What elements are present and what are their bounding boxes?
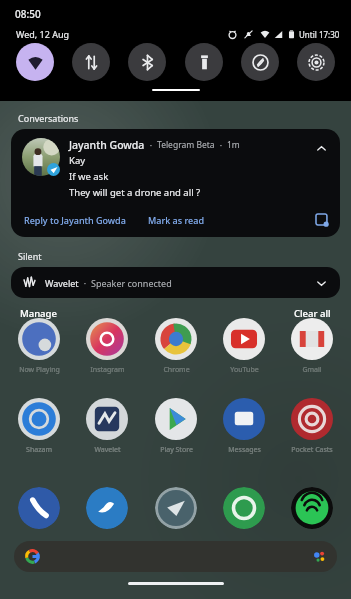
- staticText: Speaker connected: [91, 277, 172, 289]
- staticText: Conversations: [18, 112, 79, 124]
- button[interactable]: Now Playing: [12, 318, 66, 375]
- staticText: ·: [145, 139, 157, 151]
- button[interactable]: Mark as read: [146, 212, 206, 228]
- staticText: They will get a drone and all ?: [69, 186, 201, 199]
- staticText: Wavelet: [45, 277, 79, 289]
- button[interactable]: Gmail: [285, 318, 339, 375]
- button[interactable]: Play Store: [149, 398, 203, 455]
- button[interactable]: Clear all: [292, 305, 333, 322]
- button[interactable]: Pocket Casts: [285, 398, 339, 455]
- button[interactable]: Twitter: [86, 487, 128, 529]
- staticText: Shazam: [26, 445, 52, 455]
- button[interactable]: Phone: [18, 487, 60, 529]
- staticText: 1m: [227, 139, 240, 151]
- button[interactable]: WhatsApp: [223, 487, 265, 529]
- staticText: Mark as read: [148, 214, 204, 226]
- button[interactable]: Jayanth Gowda: [11, 129, 340, 237]
- staticText: YouTube: [230, 365, 259, 375]
- button[interactable]: Reply to Jayanth Gowda: [22, 212, 128, 228]
- staticText: Silent: [18, 250, 42, 262]
- button[interactable]: Flashlight: [185, 43, 223, 81]
- button[interactable]: Instagram: [80, 318, 134, 375]
- staticText: Gmail: [302, 365, 322, 375]
- staticText: Messages: [228, 445, 261, 455]
- button[interactable]: Spotify: [291, 487, 333, 529]
- staticText: Telegram Beta: [157, 139, 215, 151]
- button[interactable]: Shazam: [241, 43, 279, 81]
- staticText: ·: [215, 139, 227, 151]
- button[interactable]: Telegram: [155, 487, 197, 529]
- staticText: Kay: [69, 154, 86, 167]
- button[interactable]: Manage: [18, 305, 59, 322]
- staticText: Chrome: [163, 365, 190, 375]
- staticText: Jayanth Gowda: [69, 138, 145, 152]
- staticText: Reply to Jayanth Gowda: [24, 214, 126, 226]
- button[interactable]: Chrome: [149, 318, 203, 375]
- staticText: Clear all: [294, 307, 331, 320]
- button[interactable]: Wavelet: [80, 398, 134, 455]
- button[interactable]: Messages: [217, 398, 271, 455]
- button[interactable]: Open as bubble: [313, 211, 331, 229]
- button[interactable]: Internet: [16, 43, 54, 81]
- staticText: Until 17:30: [299, 29, 340, 40]
- staticText: Wavelet: [94, 445, 121, 455]
- button[interactable]: Mobile data: [72, 43, 110, 81]
- staticText: Instagram: [90, 365, 125, 375]
- staticText: Play Store: [160, 445, 193, 455]
- staticText: Wed, 12 Aug: [16, 28, 70, 40]
- button[interactable]: Shazam: [12, 398, 66, 455]
- button[interactable]: Wavelet: [11, 267, 340, 298]
- staticText: Pocket Casts: [291, 445, 333, 455]
- button[interactable]: Bluetooth: [128, 43, 166, 81]
- staticText: Now Playing: [19, 365, 60, 375]
- staticText: If we ask: [69, 170, 109, 183]
- staticText: ·: [79, 277, 91, 289]
- button[interactable]: Collapse notification: [311, 138, 331, 158]
- staticText: Manage: [20, 307, 57, 320]
- button[interactable]: YouTube: [217, 318, 271, 375]
- button[interactable]: Screen record: [297, 43, 335, 81]
- button[interactable]: Expand notification: [312, 274, 330, 292]
- button[interactable]: [14, 541, 337, 572]
- staticText: 08:50: [15, 7, 41, 21]
